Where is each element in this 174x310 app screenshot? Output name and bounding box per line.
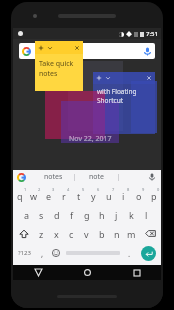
staticText: note [89, 172, 105, 182]
staticText: o [136, 190, 142, 202]
button[interactable]: Enter [141, 246, 156, 261]
staticText: v [84, 228, 89, 240]
staticText: ?123 [18, 249, 31, 257]
button[interactable]: h [94, 205, 109, 224]
button[interactable]: Voice input [145, 170, 159, 184]
staticText: u [106, 190, 112, 202]
button[interactable]: w [27, 186, 41, 205]
staticText: k [129, 209, 134, 221]
button[interactable]: x [49, 224, 64, 243]
button[interactable]: z [34, 224, 49, 243]
button[interactable]: y [86, 186, 101, 205]
button[interactable]: note [75, 170, 118, 184]
staticText: Nov 22, 2017 [69, 134, 112, 144]
staticText: 0 [157, 187, 160, 192]
staticText: n [114, 228, 120, 240]
staticText: c [69, 228, 74, 240]
staticText: 1 [24, 187, 27, 192]
staticText: notes [44, 172, 63, 182]
staticText: 5 [82, 187, 85, 192]
button[interactable]: b [94, 224, 109, 243]
staticText: Take quick notes [39, 59, 79, 79]
staticText: b [99, 228, 105, 240]
staticText: s [39, 209, 44, 221]
button[interactable]: s [34, 205, 49, 224]
staticText: , [41, 248, 44, 259]
staticText: l [145, 209, 148, 221]
button[interactable]: m [124, 224, 139, 243]
staticText: 9 [142, 187, 145, 192]
button[interactable]: Backspace [139, 224, 161, 243]
other: Voice search [142, 46, 152, 56]
staticText: m [127, 228, 136, 240]
button[interactable]: Emoji [49, 243, 63, 263]
button[interactable]: Shift [13, 224, 34, 243]
button[interactable]: Take quick notes [35, 41, 83, 91]
button[interactable]: r [56, 186, 71, 205]
staticText: with Floating Shortcut [97, 87, 137, 105]
staticText: 7 [112, 187, 115, 192]
button[interactable]: v [79, 224, 94, 243]
button[interactable]: g [79, 205, 94, 224]
staticText: a [24, 209, 30, 221]
staticText: 8 [127, 187, 130, 192]
staticText: y [91, 190, 96, 202]
staticText: 4 [67, 187, 70, 192]
button[interactable]: n [109, 224, 124, 243]
staticText: z [39, 228, 44, 240]
staticText: f [70, 209, 74, 221]
staticText: e [46, 190, 52, 202]
staticText: . [128, 248, 131, 259]
button[interactable]: d [49, 205, 64, 224]
button[interactable]: e [41, 186, 56, 205]
staticText: j [115, 209, 118, 221]
button[interactable]: j [109, 205, 124, 224]
staticText: g [84, 209, 90, 221]
button[interactable]: l [139, 205, 154, 224]
button[interactable]: Voice search [19, 43, 155, 59]
button[interactable]: Recents [112, 265, 161, 280]
staticText: p [151, 190, 157, 202]
staticText: 2 [38, 187, 41, 192]
button[interactable]: c [64, 224, 79, 243]
button[interactable]: ?123 [13, 243, 35, 263]
button[interactable]: i [116, 186, 131, 205]
button[interactable]: , [35, 243, 49, 263]
staticText: 6 [97, 187, 100, 192]
staticText: q [17, 190, 23, 202]
staticText: h [99, 209, 105, 221]
button[interactable]: k [124, 205, 139, 224]
button[interactable]: q [13, 186, 27, 205]
button[interactable]: Back [13, 265, 63, 280]
button[interactable]: u [101, 186, 116, 205]
button[interactable]: Home [63, 265, 112, 280]
button[interactable]: a [19, 205, 34, 224]
staticText: x [54, 228, 59, 240]
button[interactable]: p [146, 186, 161, 205]
staticText: t [77, 190, 81, 202]
button[interactable]: Space [63, 243, 122, 263]
button[interactable]: f [64, 205, 79, 224]
staticText: r [62, 190, 66, 202]
button[interactable]: o [131, 186, 146, 205]
staticText: i [122, 190, 125, 202]
staticText: d [54, 209, 60, 221]
button[interactable]: . [122, 243, 136, 263]
button[interactable]: notes [32, 170, 74, 184]
button[interactable]: t [71, 186, 86, 205]
staticText: 7:51 [146, 30, 158, 38]
staticText: 3 [52, 187, 55, 192]
staticText: w [30, 190, 38, 202]
